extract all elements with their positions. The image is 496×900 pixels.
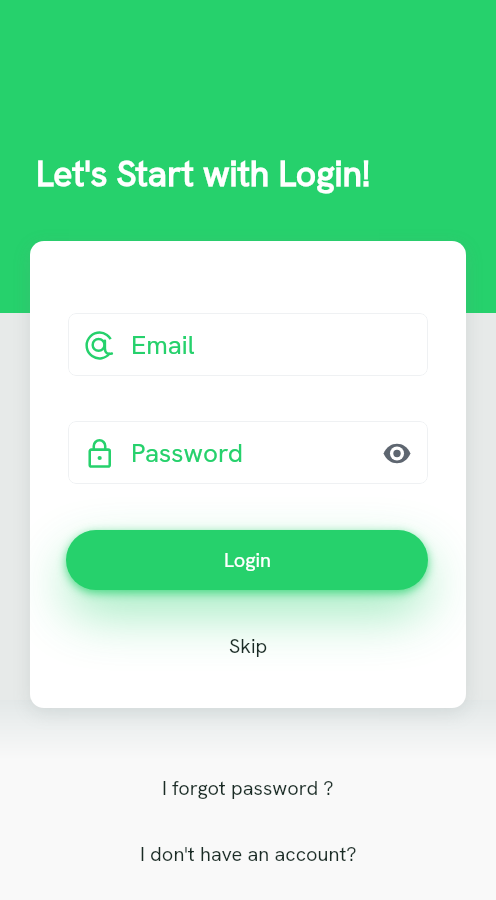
staticText: I don't have an account? (140, 841, 357, 867)
staticText: Skip (229, 633, 268, 659)
button[interactable]: Show password (380, 436, 414, 470)
button[interactable]: Password (68, 421, 428, 484)
button[interactable]: Login (66, 530, 428, 590)
staticText: Let's Start with Login! (36, 150, 371, 196)
staticText: Email (131, 328, 195, 362)
staticText: Login (224, 547, 271, 573)
button[interactable]: Skip (205, 624, 292, 668)
button[interactable]: Email (68, 313, 428, 376)
staticText: Password (131, 436, 244, 470)
staticText: I forgot password ? (162, 775, 334, 801)
button[interactable]: I forgot password ? (144, 768, 352, 808)
button[interactable]: I don't have an account? (122, 834, 375, 874)
